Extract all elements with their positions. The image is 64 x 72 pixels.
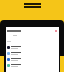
button[interactable] [6, 44, 59, 50]
button[interactable] [6, 50, 59, 56]
button[interactable] [6, 56, 59, 62]
button[interactable] [6, 62, 59, 68]
